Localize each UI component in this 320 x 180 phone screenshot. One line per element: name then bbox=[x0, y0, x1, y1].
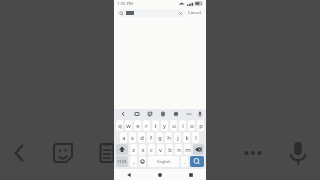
button[interactable]: l bbox=[192, 132, 199, 143]
staticText: s bbox=[131, 134, 134, 142]
button[interactable]: Shift bbox=[116, 144, 128, 155]
button[interactable]: Back bbox=[114, 169, 144, 180]
button[interactable]: c bbox=[148, 144, 155, 155]
staticText: 1:35 PM bbox=[117, 1, 133, 7]
button[interactable]: x bbox=[139, 144, 146, 155]
button[interactable]: i bbox=[179, 120, 186, 131]
button[interactable]: p bbox=[197, 120, 204, 131]
button[interactable]: o bbox=[188, 120, 195, 131]
button[interactable]: q bbox=[116, 120, 123, 131]
staticText: g bbox=[158, 134, 162, 142]
staticText: f bbox=[150, 134, 152, 142]
staticText: h bbox=[167, 134, 171, 142]
staticText: English bbox=[157, 159, 171, 164]
button[interactable]: . bbox=[181, 156, 188, 167]
button[interactable]: f bbox=[147, 132, 154, 143]
button[interactable]: Home bbox=[144, 169, 175, 180]
button[interactable]: d bbox=[138, 132, 145, 143]
button[interactable]: e bbox=[134, 120, 141, 131]
staticText: m bbox=[185, 146, 191, 154]
staticText: b bbox=[168, 146, 172, 154]
button[interactable]: a bbox=[120, 132, 127, 143]
button[interactable]: Emoji bbox=[139, 156, 146, 167]
button[interactable]: k bbox=[183, 132, 190, 143]
staticText: n bbox=[177, 146, 181, 154]
staticText: c bbox=[150, 146, 153, 154]
staticText: , bbox=[133, 158, 135, 166]
button[interactable]: s bbox=[129, 132, 136, 143]
button[interactable]: Backspace bbox=[193, 144, 204, 155]
button[interactable]: , bbox=[130, 156, 137, 167]
button[interactable]: English bbox=[148, 156, 179, 167]
button[interactable]: h bbox=[165, 132, 172, 143]
staticText: u bbox=[172, 122, 176, 130]
staticText: d bbox=[140, 134, 144, 142]
staticText: i bbox=[182, 122, 184, 130]
staticText: p bbox=[199, 122, 203, 130]
button[interactable]: Sticker bbox=[143, 109, 156, 119]
button[interactable]: u bbox=[170, 120, 177, 131]
button[interactable]: w bbox=[125, 120, 132, 131]
button[interactable]: Recents bbox=[175, 169, 206, 180]
staticText: r bbox=[145, 122, 148, 130]
button[interactable]: Clipboard bbox=[156, 109, 169, 119]
button[interactable]: Back bbox=[116, 109, 130, 119]
button[interactable]: Settings bbox=[169, 109, 182, 119]
button[interactable]: Clear bbox=[178, 11, 183, 16]
staticText: l bbox=[195, 134, 197, 142]
staticText: e bbox=[136, 122, 140, 130]
staticText: t bbox=[154, 122, 157, 130]
button[interactable]: Clear bbox=[117, 9, 185, 17]
staticText: Cancel bbox=[188, 10, 202, 16]
staticText: a bbox=[122, 134, 126, 142]
button[interactable]: GIF bbox=[130, 109, 143, 119]
button[interactable]: g bbox=[156, 132, 163, 143]
button[interactable]: Voice input bbox=[195, 109, 204, 119]
staticText: o bbox=[190, 122, 194, 130]
staticText: y bbox=[163, 122, 166, 130]
staticText: x bbox=[141, 146, 145, 154]
button[interactable]: More bbox=[182, 109, 195, 119]
staticText: z bbox=[132, 146, 135, 154]
button[interactable]: m bbox=[184, 144, 191, 155]
button[interactable]: b bbox=[166, 144, 173, 155]
staticText: q bbox=[118, 122, 122, 130]
button[interactable]: Search bbox=[190, 156, 204, 167]
staticText: j bbox=[177, 134, 179, 142]
button[interactable]: z bbox=[130, 144, 137, 155]
button[interactable]: r bbox=[143, 120, 150, 131]
button[interactable]: t bbox=[152, 120, 159, 131]
button[interactable]: y bbox=[161, 120, 168, 131]
button[interactable]: n bbox=[175, 144, 182, 155]
staticText: w bbox=[126, 122, 131, 130]
button[interactable]: v bbox=[157, 144, 164, 155]
staticText: ?123 bbox=[117, 159, 127, 165]
button[interactable]: j bbox=[174, 132, 181, 143]
staticText: v bbox=[159, 146, 162, 154]
button[interactable]: Cancel bbox=[187, 10, 203, 16]
staticText: . bbox=[184, 158, 186, 166]
button[interactable]: ?123 bbox=[116, 156, 128, 167]
staticText: k bbox=[185, 134, 189, 142]
